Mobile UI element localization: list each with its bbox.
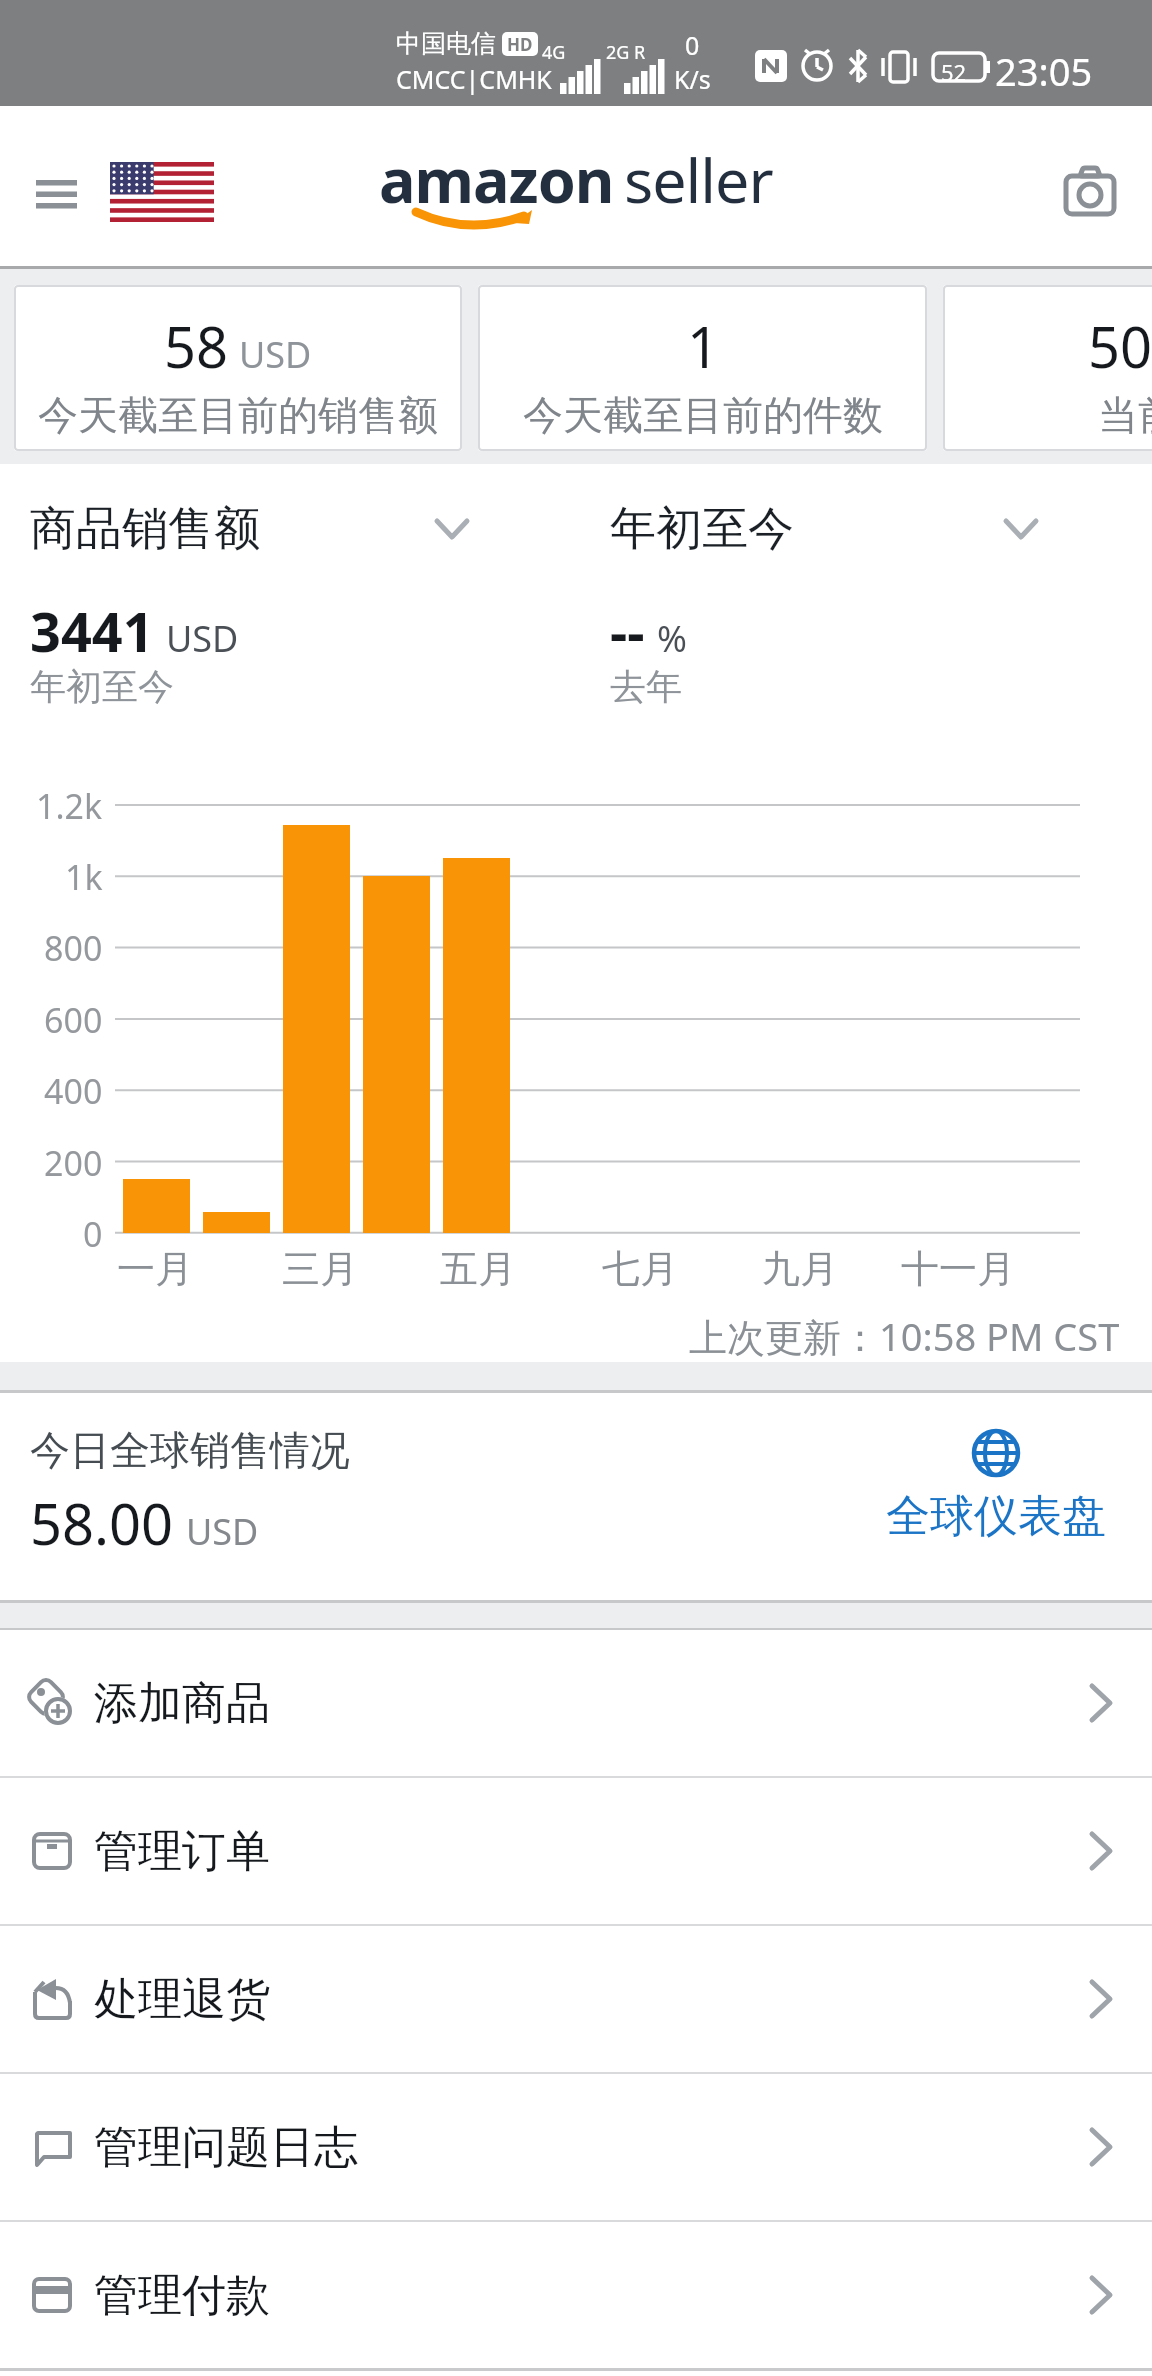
button[interactable]: 全球仪表盘: [886, 1429, 1106, 1544]
staticText: 今天截至目前的件数: [523, 390, 883, 440]
staticText: 200: [44, 1140, 103, 1184]
staticText: HD: [507, 33, 533, 56]
staticText: 九月: [762, 1245, 838, 1293]
staticText: 58: [164, 308, 229, 384]
staticText: 当前库存: [1098, 390, 1152, 440]
button[interactable]: [1066, 168, 1118, 214]
staticText: 58.00: [30, 1485, 174, 1561]
staticText: %: [657, 614, 687, 663]
staticText: USD: [239, 330, 312, 379]
staticText: 三月: [282, 1245, 358, 1293]
staticText: 今天截至目前的销售额: [38, 390, 438, 440]
staticText: 添加商品: [94, 1676, 270, 1731]
button[interactable]: 503: [943, 285, 1152, 451]
staticText: 600: [44, 997, 103, 1041]
staticText: 商品销售额: [30, 500, 260, 558]
staticText: 七月: [602, 1245, 678, 1293]
staticText: 0: [685, 28, 700, 62]
staticText: 今日全球销售情况: [30, 1425, 350, 1475]
staticText: USD: [166, 614, 239, 663]
staticText: 4G: [542, 40, 566, 65]
staticText: CMCC|CMHK: [396, 62, 552, 96]
staticText: 中国电信: [396, 28, 496, 59]
staticText: 上次更新：10:58 PM CST: [689, 1310, 1120, 1362]
staticText: 23:05: [995, 45, 1093, 97]
staticText: --: [610, 594, 645, 668]
staticText: 2G R: [606, 40, 646, 65]
button[interactable]: 58: [14, 285, 462, 451]
staticText: 0: [83, 1211, 103, 1255]
staticText: 一月: [117, 1245, 193, 1293]
button[interactable]: [110, 162, 214, 222]
staticText: 管理付款: [94, 2268, 270, 2323]
staticText: 年初至今: [610, 500, 794, 558]
button[interactable]: 管理付款: [0, 2222, 1152, 2368]
staticText: 800: [44, 925, 103, 969]
staticText: 3441: [30, 594, 154, 668]
staticText: seller: [624, 138, 773, 221]
button[interactable]: 处理退货: [0, 1926, 1152, 2072]
staticText: K/s: [674, 62, 711, 96]
staticText: USD: [186, 1507, 259, 1556]
staticText: 503: [1088, 308, 1152, 384]
staticText: 1k: [65, 854, 103, 898]
button[interactable]: 年初至今: [610, 500, 1038, 558]
staticText: 52: [941, 57, 967, 87]
button[interactable]: 管理问题日志: [0, 2074, 1152, 2220]
staticText: 五月: [440, 1245, 516, 1293]
button[interactable]: 1: [478, 285, 927, 451]
button[interactable]: amazon: [296, 138, 856, 262]
staticText: 去年: [610, 664, 682, 709]
staticText: 管理订单: [94, 1824, 270, 1879]
staticText: 1: [687, 308, 720, 384]
staticText: amazon: [379, 138, 614, 221]
staticText: 十一月: [901, 1245, 1015, 1293]
staticText: 管理问题日志: [94, 2120, 358, 2175]
staticText: 全球仪表盘: [886, 1489, 1106, 1544]
button[interactable]: [16, 164, 96, 224]
button[interactable]: 添加商品: [0, 1630, 1152, 1776]
button[interactable]: 管理订单: [0, 1778, 1152, 1924]
staticText: 处理退货: [94, 1972, 270, 2027]
staticText: 400: [44, 1068, 103, 1112]
button[interactable]: 商品销售额: [30, 500, 469, 558]
staticText: 年初至今: [30, 664, 174, 709]
staticText: 1.2k: [36, 783, 103, 827]
